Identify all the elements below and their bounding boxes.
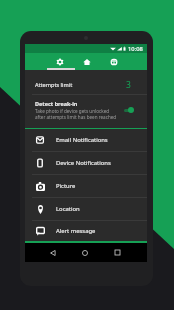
staticText: Alert message xyxy=(56,227,96,235)
button[interactable]: Alert message xyxy=(25,221,147,241)
button[interactable]: Settings xyxy=(46,53,73,70)
staticText: after attempts limit has been reached xyxy=(35,114,117,120)
staticText: Device Notifications xyxy=(56,159,111,167)
staticText: Detect break-in xyxy=(35,100,78,107)
button[interactable]: Intruders xyxy=(100,53,127,70)
staticText: Picture xyxy=(56,182,76,190)
staticText: 10:08 xyxy=(128,45,143,53)
button[interactable]: Home xyxy=(76,244,93,261)
button[interactable]: Picture xyxy=(25,175,147,197)
staticText: Email Notifications xyxy=(56,136,108,144)
staticText: Location xyxy=(56,205,80,213)
button[interactable]: Detect break-in xyxy=(25,95,147,128)
button[interactable]: Recents xyxy=(109,244,126,261)
button[interactable]: Home xyxy=(73,53,100,70)
button[interactable]: Email Notifications xyxy=(25,129,147,151)
staticText: Attempts limit xyxy=(35,81,73,89)
button[interactable]: Attempts limit xyxy=(25,70,147,94)
staticText: 3 xyxy=(126,79,131,91)
staticText: Take photo if device gets unlocked xyxy=(35,108,110,114)
button[interactable]: Device Notifications xyxy=(25,152,147,174)
button[interactable]: Location xyxy=(25,198,147,220)
button[interactable]: Back xyxy=(44,244,61,261)
